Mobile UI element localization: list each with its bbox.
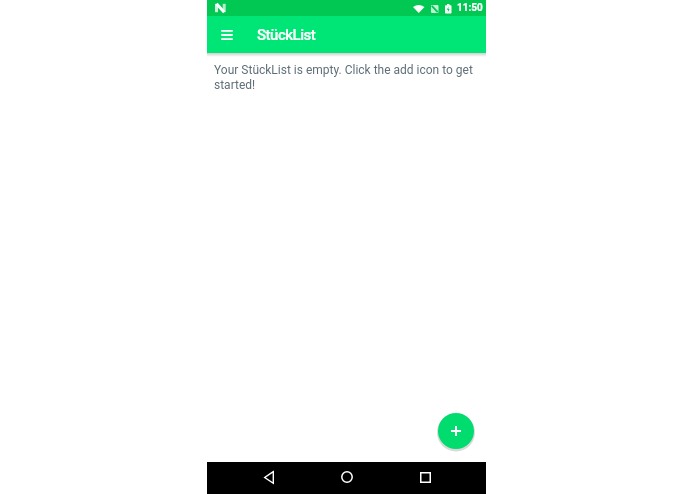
button[interactable]	[215, 23, 239, 47]
staticText: StückList	[257, 26, 316, 44]
button[interactable]	[436, 411, 476, 451]
button[interactable]	[415, 467, 435, 487]
button[interactable]	[259, 467, 279, 487]
staticText: 11:50	[457, 2, 483, 14]
button[interactable]	[337, 467, 357, 487]
staticText: Your StückList is empty. Click the add i…	[214, 63, 473, 91]
